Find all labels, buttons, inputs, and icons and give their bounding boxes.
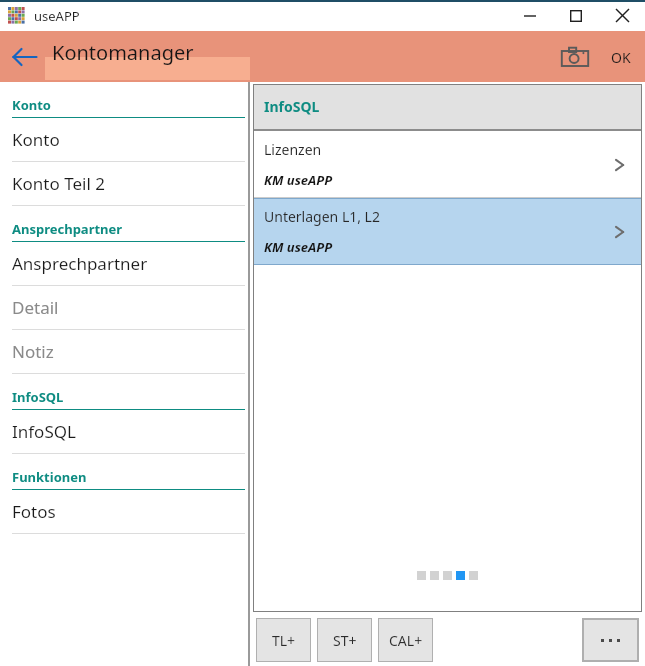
- staticText: OK: [611, 48, 631, 67]
- button[interactable]: TL+: [256, 618, 311, 662]
- button[interactable]: Fotos: [0, 490, 248, 533]
- staticText: Lizenzen: [264, 140, 322, 159]
- staticText: InfoSQL: [12, 388, 64, 406]
- button[interactable]: Ansprechpartner: [0, 242, 248, 285]
- button[interactable]: max: [553, 0, 599, 31]
- staticText: KM useAPP: [264, 238, 333, 256]
- staticText: Kontomanager: [52, 39, 194, 66]
- button[interactable]: OK: [597, 35, 645, 79]
- button[interactable]: close: [599, 0, 645, 31]
- button[interactable]: Konto Teil 2: [0, 162, 248, 205]
- button[interactable]: Camera: [553, 35, 597, 79]
- staticText: Funktionen: [12, 468, 87, 486]
- button[interactable]: Back: [6, 38, 44, 76]
- button[interactable]: CAL+: [378, 618, 433, 662]
- staticText: Ansprechpartner: [12, 220, 123, 238]
- button: Notiz: [0, 330, 248, 373]
- staticText: Konto: [12, 96, 51, 114]
- staticText: TL+: [272, 631, 296, 650]
- staticText: Notiz: [12, 340, 54, 363]
- staticText: Konto Teil 2: [12, 172, 105, 195]
- button[interactable]: InfoSQL: [0, 410, 248, 453]
- staticText: ST+: [333, 631, 357, 650]
- staticText: Ansprechpartner: [12, 252, 148, 275]
- staticText: Detail: [12, 296, 59, 319]
- button[interactable]: Lizenzen: [253, 131, 642, 198]
- button: Detail: [0, 286, 248, 329]
- button[interactable]: ST+: [317, 618, 372, 662]
- staticText: Unterlagen L1, L2: [264, 207, 380, 226]
- staticText: Konto: [12, 128, 60, 151]
- staticText: CAL+: [389, 631, 423, 650]
- button[interactable]: min: [507, 0, 553, 31]
- staticText: InfoSQL: [264, 97, 320, 116]
- staticText: useAPP: [34, 7, 80, 25]
- button[interactable]: More options: [582, 618, 639, 662]
- staticText: Fotos: [12, 500, 56, 523]
- staticText: InfoSQL: [12, 420, 76, 443]
- staticText: KM useAPP: [264, 171, 333, 189]
- button[interactable]: Unterlagen L1, L2: [253, 198, 642, 265]
- button[interactable]: Konto: [0, 118, 248, 161]
